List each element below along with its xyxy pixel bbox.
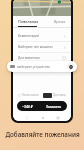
button[interactable]: Перевозка животных возле города [13,64,71,74]
staticText: Для животных [18,56,40,60]
staticText: Время [54,19,66,24]
button[interactable]: выберите устройство [7,61,77,72]
button[interactable]: Home [40,115,45,120]
button[interactable]: Пожелания [18,18,39,25]
staticText: Заказать [46,104,62,109]
button[interactable]: Комментарий [13,31,71,41]
staticText: Пожелания [18,19,39,24]
button[interactable]: Back [24,115,29,120]
staticText: Наличными [22,93,39,97]
button[interactable]: Время [54,18,66,25]
button[interactable]: Print [67,63,74,70]
staticText: Выберите тип машины [18,45,53,49]
staticText: ~344 ₽ [22,104,33,109]
staticText: Добавляйте пожелания [5,130,80,138]
button[interactable]: Для животных [13,53,71,63]
button[interactable]: Выберите тип машины [13,42,71,52]
staticText: Комментарий [18,34,39,38]
button[interactable]: Recents [55,115,60,120]
button[interactable]: Card [43,93,52,98]
staticText: Перевозка животных возле города [18,67,66,71]
staticText: выберите устройство [17,65,50,69]
button[interactable]: ~344 ₽ [17,101,67,111]
staticText: Доставка [53,93,66,97]
